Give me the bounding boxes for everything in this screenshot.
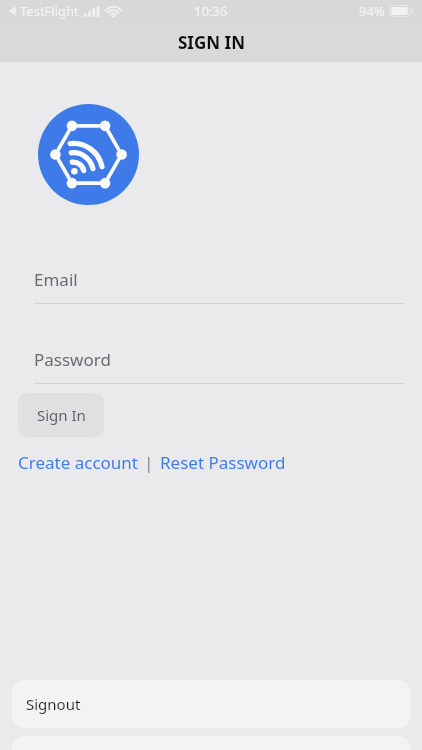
button[interactable]: Sign In	[18, 393, 104, 437]
staticText: Reset Password	[160, 451, 286, 474]
staticText: TestFlight	[20, 2, 79, 20]
staticText: 94%	[359, 2, 385, 20]
staticText: SIGN IN	[178, 31, 245, 54]
staticText: Create account	[18, 451, 138, 474]
staticText: Signout	[26, 694, 81, 714]
staticText: 10:36	[194, 2, 228, 20]
staticText: Password	[34, 348, 111, 371]
button[interactable]: Reset Password	[160, 447, 286, 478]
button[interactable]: Create account	[18, 447, 138, 478]
staticText: Email	[34, 268, 78, 291]
button[interactable]: Email	[0, 268, 422, 304]
button[interactable]: Password	[0, 348, 422, 384]
staticText: Sign In	[37, 405, 86, 425]
staticText: |	[144, 451, 154, 474]
button[interactable]: Signout	[12, 680, 410, 728]
